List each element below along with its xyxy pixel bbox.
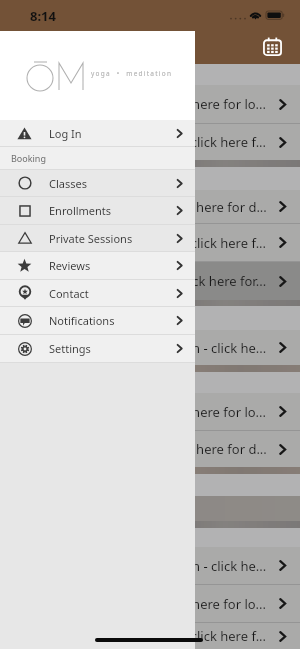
staticText: Private Sessions — [49, 231, 133, 246]
button[interactable]: Register online here for lo... — [0, 393, 300, 430]
button[interactable]: Enrollments — [0, 197, 195, 224]
staticText: Settings — [49, 341, 91, 356]
button[interactable]: Register - click here for... — [0, 262, 300, 300]
button[interactable]: Registration - click he... — [0, 547, 300, 584]
staticText: Register online here for d... — [101, 198, 267, 216]
button[interactable]: Register online here for lo... — [0, 585, 300, 622]
button[interactable]: Register online here for lo... — [0, 85, 300, 123]
staticText: Log In — [49, 126, 82, 141]
staticText: Register - click here for... — [118, 272, 267, 290]
staticText: Notifications — [49, 313, 115, 328]
button[interactable]: Log In — [0, 120, 195, 146]
staticText: Contact — [49, 286, 89, 301]
button[interactable]: Private Sessions — [0, 225, 195, 251]
staticText: Register online here for d... — [101, 440, 267, 458]
staticText: yoga • meditation — [91, 69, 173, 78]
button[interactable]: Sign up today - click here f... — [0, 623, 300, 649]
button[interactable]: Settings — [0, 335, 195, 362]
staticText: Classes — [49, 176, 87, 191]
button[interactable]: Sign up today - click here f... — [0, 224, 300, 261]
button[interactable]: Register online here for d... — [0, 431, 300, 467]
staticText: Enrollments — [49, 203, 112, 218]
staticText: Sign up today - click here f... — [96, 133, 267, 151]
staticText: Register online here for lo... — [97, 403, 267, 421]
button[interactable]: Sign up today - click here f... — [0, 124, 300, 160]
button[interactable]: Reviews — [0, 252, 195, 279]
button[interactable]: Notifications — [0, 307, 195, 334]
button[interactable]: Register online here for d... — [0, 190, 300, 223]
staticText: Reviews — [49, 258, 91, 273]
button[interactable]: Calendar — [260, 34, 284, 58]
staticText: 8:14 — [30, 7, 56, 25]
staticText: Registration - click he... — [126, 557, 267, 575]
staticText: Registration - click he... — [126, 339, 267, 357]
staticText: Register online here for lo... — [97, 595, 267, 613]
button[interactable]: Registration - click he... — [0, 330, 300, 365]
staticText: Booking — [11, 152, 46, 164]
staticText: Register online here for lo... — [97, 95, 267, 113]
button[interactable]: Contact — [0, 280, 195, 306]
button[interactable]: Classes — [0, 170, 195, 196]
staticText: Sign up today - click here f... — [96, 234, 267, 252]
staticText: Sign up today - click here f... — [96, 627, 267, 645]
